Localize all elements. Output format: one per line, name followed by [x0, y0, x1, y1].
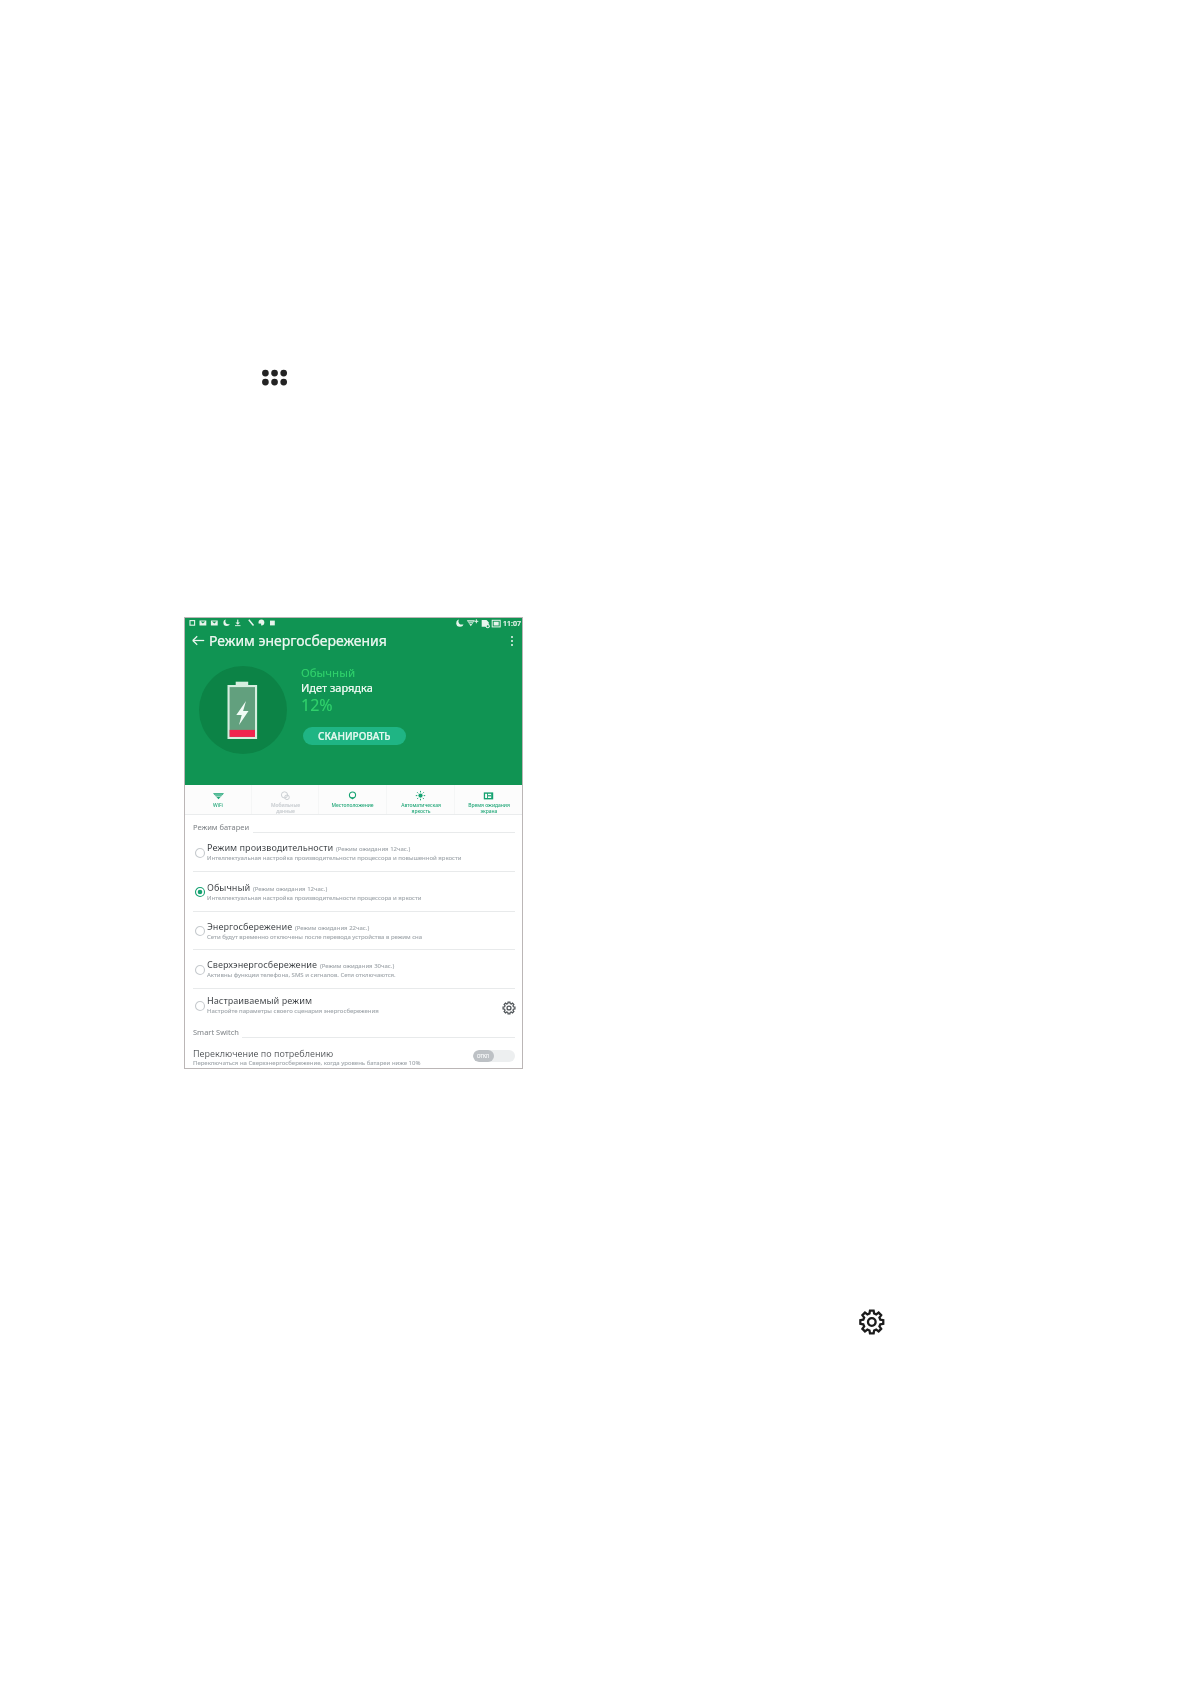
- staticText: Активны функции телефона, SMS и сигналов…: [207, 971, 396, 979]
- staticText: 11:07: [503, 619, 521, 629]
- staticText: Время ожидания экрана: [468, 802, 510, 815]
- button[interactable]: СКАНИРОВАТЬ: [303, 727, 406, 745]
- staticText: 12%: [301, 694, 333, 716]
- button[interactable]: Обычный: [185, 872, 522, 912]
- staticText: Smart Switch: [193, 1027, 239, 1037]
- button[interactable]: Время ожидания экрана: [455, 785, 522, 815]
- staticText: Режим энергосбережения: [209, 631, 387, 650]
- button[interactable]: Configure custom mode: [495, 989, 522, 1022]
- button[interactable]: Toggle consumption switching, off: [473, 1050, 515, 1062]
- staticText: Сети будут временно отключены после пере…: [207, 933, 423, 941]
- button[interactable]: Режим производительности: [185, 833, 522, 872]
- staticText: Интеллектуальная настройка производитель…: [207, 894, 422, 902]
- staticText: Переключаться на Сверхэнергосбережение, …: [193, 1059, 421, 1067]
- staticText: Режим батареи: [193, 822, 250, 832]
- button[interactable]: Settings: [859, 1309, 885, 1335]
- staticText: WiFi: [213, 802, 223, 809]
- staticText: Идет зарядка: [301, 680, 373, 695]
- staticText: Режим производительности: [207, 841, 334, 853]
- staticText: Автоматическая яркость: [401, 802, 441, 815]
- staticText: Интеллектуальная настройка производитель…: [207, 854, 462, 862]
- button[interactable]: Apps: [260, 368, 288, 396]
- staticText: Сверхэнергосбережение: [207, 958, 318, 970]
- button[interactable]: Энергосбережение: [185, 912, 522, 950]
- staticText: ОТКЛ: [477, 1053, 490, 1059]
- staticText: Настройте параметры своего сценария энер…: [207, 1007, 379, 1015]
- button[interactable]: More options: [502, 631, 522, 651]
- staticText: Обычный: [301, 665, 356, 681]
- staticText: Обычный: [207, 881, 251, 893]
- button[interactable]: Сверхэнергосбережение: [185, 950, 522, 989]
- staticText: (Режим ожидания 22час.): [295, 924, 370, 932]
- staticText: Энергосбережение: [207, 920, 293, 932]
- button[interactable]: Настраиваемый режим: [185, 989, 522, 1022]
- staticText: Мобильные данные: [271, 802, 300, 815]
- button[interactable]: Переключение по потреблению: [185, 1038, 522, 1069]
- button[interactable]: Мобильные данные: [252, 785, 318, 815]
- staticText: Переключение по потреблению: [193, 1047, 334, 1059]
- button[interactable]: Back: [188, 630, 208, 650]
- staticText: Настраиваемый режим: [207, 994, 312, 1006]
- button[interactable]: Местоположение: [319, 785, 386, 815]
- button[interactable]: WiFi: [185, 785, 251, 815]
- staticText: (Режим ожидания 12час.): [336, 845, 411, 853]
- staticText: (Режим ожидания 12час.): [253, 885, 328, 893]
- button[interactable]: Автоматическая яркость: [387, 785, 454, 815]
- staticText: (Режим ожидания 30час.): [320, 962, 395, 970]
- staticText: СКАНИРОВАТЬ: [318, 729, 391, 743]
- staticText: Местоположение: [331, 802, 374, 809]
